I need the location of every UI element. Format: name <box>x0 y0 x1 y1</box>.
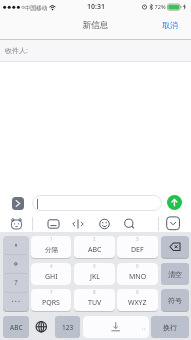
button[interactable]: 3 <box>117 236 158 258</box>
staticText: 新信息 <box>82 20 109 31</box>
staticText: 72% <box>154 3 166 11</box>
staticText: 5 <box>93 263 96 269</box>
staticText: MNO <box>129 272 147 282</box>
staticText: 收件人: <box>5 46 28 56</box>
button[interactable]: 6 <box>117 263 158 285</box>
button[interactable]: 1 <box>31 236 71 258</box>
button[interactable] <box>32 195 162 211</box>
button[interactable] <box>3 236 29 311</box>
button[interactable] <box>47 217 60 231</box>
staticText: 8 <box>93 289 96 295</box>
button[interactable]: 符号 <box>161 289 189 311</box>
staticText: 3 <box>136 236 139 242</box>
staticText: 9 <box>136 289 139 295</box>
staticText: TUV <box>88 298 102 308</box>
staticText: WXYZ <box>128 298 147 308</box>
button[interactable] <box>123 217 136 231</box>
staticText: 4 <box>50 263 53 269</box>
button[interactable] <box>161 236 189 258</box>
staticText: 换行 <box>163 323 177 332</box>
button[interactable] <box>10 217 23 231</box>
button[interactable] <box>71 217 85 231</box>
staticText: DEF <box>131 245 144 255</box>
staticText: 取消 <box>162 20 178 30</box>
button[interactable] <box>167 195 182 210</box>
button[interactable] <box>12 197 24 210</box>
staticText: 6 <box>136 263 139 269</box>
button[interactable]: 2 <box>74 236 115 258</box>
button[interactable]: 换行 <box>151 316 189 338</box>
staticText: ABC <box>88 245 102 255</box>
button[interactable]: 4 <box>31 263 71 285</box>
staticText: JKL <box>90 272 100 282</box>
staticText: 清空 <box>168 270 182 279</box>
staticText: 2 <box>93 236 96 242</box>
button[interactable]: 5 <box>74 263 115 285</box>
staticText: PQRS <box>42 298 60 308</box>
staticText: ABC <box>10 323 23 332</box>
staticText: ? <box>14 278 18 288</box>
staticText: 分隔 <box>45 246 58 254</box>
button[interactable]: 9 <box>117 289 158 311</box>
button[interactable]: 7 <box>31 289 71 311</box>
button[interactable] <box>83 316 149 338</box>
button[interactable]: 清空 <box>161 263 189 285</box>
button[interactable]: 取消 <box>156 18 184 32</box>
button[interactable] <box>98 217 111 231</box>
staticText: GHI <box>45 272 58 282</box>
staticText: 符号 <box>168 296 182 305</box>
button[interactable]: 123 <box>55 316 80 338</box>
button[interactable] <box>0 40 191 62</box>
staticText: 7 <box>50 289 53 295</box>
staticText: 123 <box>62 323 74 332</box>
staticText: 1 <box>50 236 53 242</box>
button[interactable]: ABC <box>3 316 29 338</box>
staticText: 中国移动 <box>24 4 48 11</box>
button[interactable]: 8 <box>74 289 115 311</box>
button[interactable] <box>166 216 180 230</box>
staticText: 10:31 <box>87 2 105 12</box>
button[interactable] <box>31 316 52 338</box>
